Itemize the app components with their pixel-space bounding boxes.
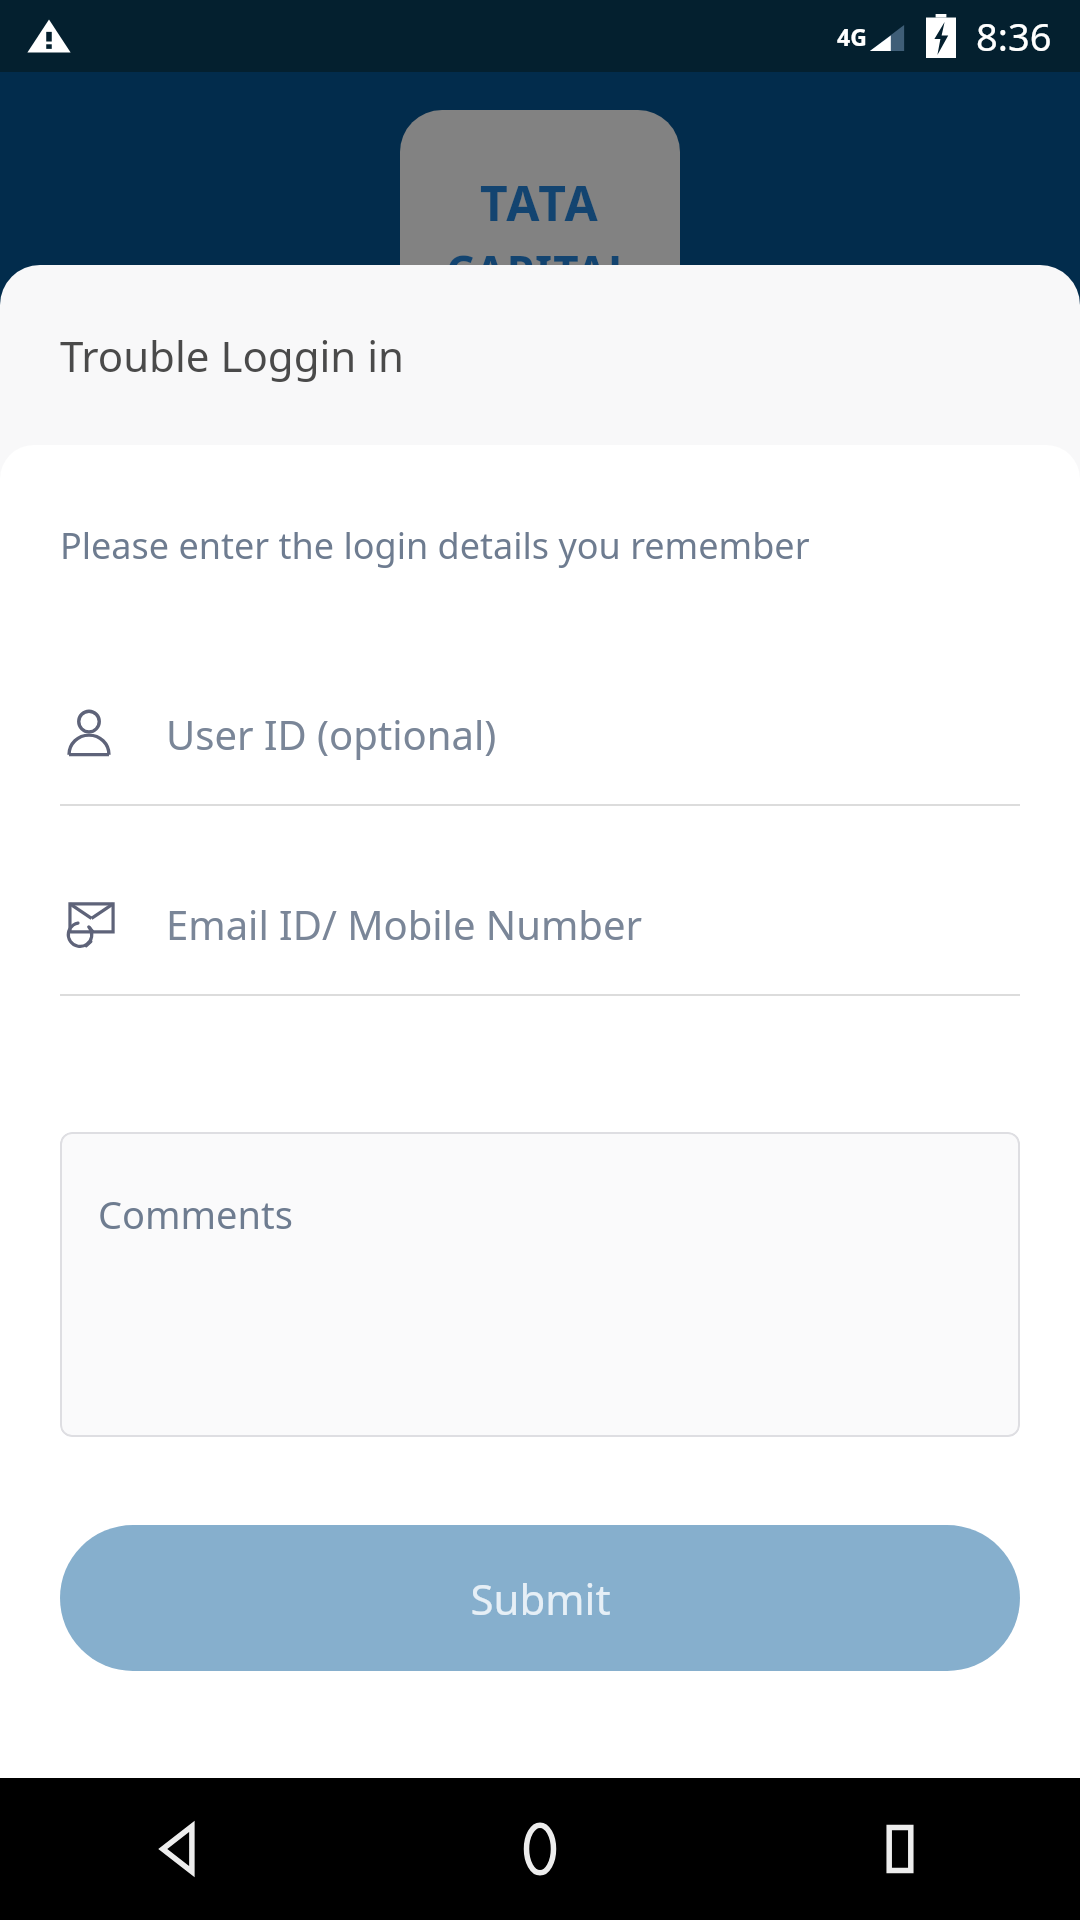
staticText: User ID (optional) (166, 707, 497, 761)
staticText: Comments (98, 1188, 293, 1240)
staticText: 4G (837, 21, 867, 52)
button[interactable]: Back (0, 1778, 360, 1920)
button[interactable]: Email ID/ Mobile Number (60, 876, 1020, 996)
button[interactable]: User ID (optional) (60, 686, 1020, 806)
staticText: Trouble Loggin in (60, 327, 404, 384)
staticText: Please enter the login details you remem… (60, 521, 810, 570)
staticText: CAPITAL (446, 241, 634, 301)
button[interactable]: Comments (60, 1132, 1020, 1437)
staticText: Email ID/ Mobile Number (166, 897, 643, 951)
staticText: TATA (480, 170, 600, 235)
button[interactable]: Recent apps (720, 1778, 1080, 1920)
staticText: 8:36 (976, 10, 1052, 62)
button[interactable]: Home (360, 1778, 720, 1920)
button[interactable]: Submit (60, 1525, 1020, 1671)
staticText: Submit (470, 1570, 611, 1627)
